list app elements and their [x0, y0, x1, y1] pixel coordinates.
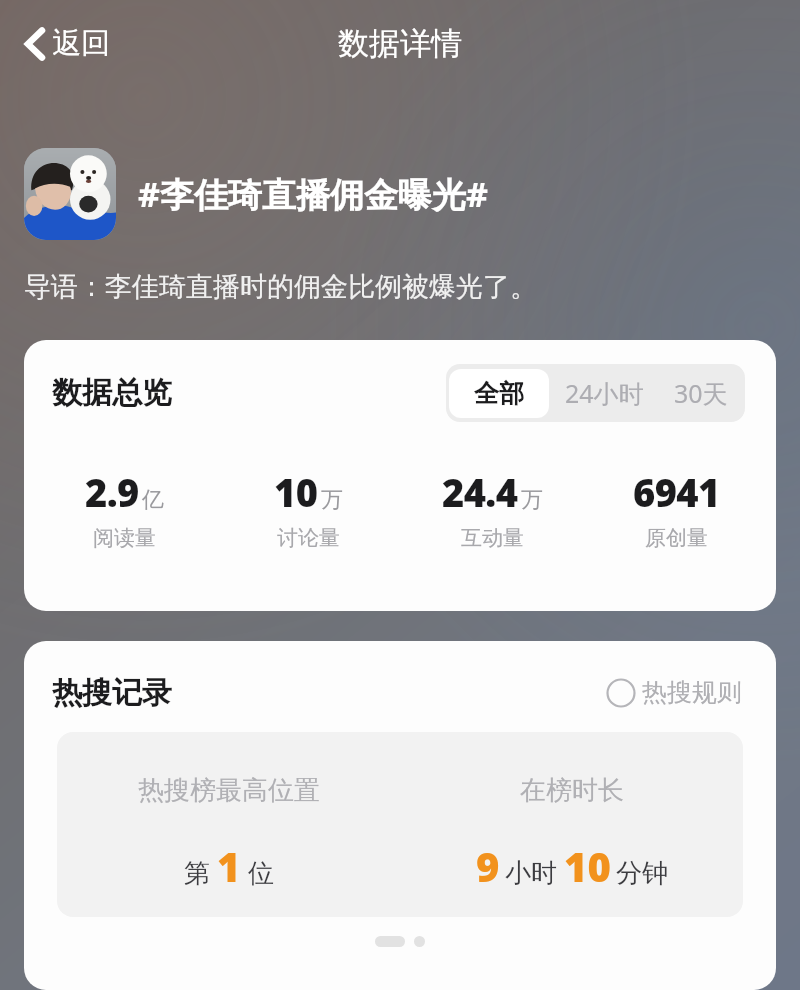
button[interactable]: 热搜榜最高位置 — [57, 732, 400, 917]
button[interactable]: 30天 — [660, 367, 742, 419]
button[interactable]: 10 — [216, 466, 400, 551]
staticText: 24.4 — [442, 466, 518, 518]
staticText: 返回 — [52, 25, 110, 62]
staticText: 1 — [217, 839, 241, 893]
button[interactable]: 24.4 — [400, 466, 584, 551]
staticText: 30天 — [674, 376, 728, 410]
staticText: 万 — [521, 486, 543, 514]
staticText: 导语：李佳琦直播时的佣金比例被爆光了。 — [24, 270, 537, 304]
button[interactable]: #李佳琦直播佣金曝光# — [24, 148, 776, 240]
button[interactable]: 6941 — [584, 466, 768, 551]
staticText: 在榜时长 — [520, 774, 624, 807]
staticText: 热搜榜最高位置 — [138, 774, 320, 807]
staticText: 24小时 — [565, 376, 644, 410]
staticText: 亿 — [142, 486, 164, 514]
button[interactable]: 2.9 — [32, 466, 216, 551]
staticText: 讨论量 — [277, 525, 340, 551]
staticText: 阅读量 — [93, 525, 156, 551]
staticText: 2.9 — [85, 466, 139, 518]
staticText: 数据详情 — [338, 24, 462, 63]
button[interactable]: 24小时 — [549, 367, 660, 419]
staticText: 10 — [274, 466, 318, 518]
staticText: 原创量 — [645, 525, 708, 551]
staticText: 第 — [184, 857, 210, 890]
button[interactable]: 在榜时长 — [400, 732, 743, 917]
button[interactable]: 返回 — [16, 19, 118, 68]
staticText: 全部 — [474, 378, 524, 409]
staticText: 10 — [564, 839, 611, 893]
staticText: 9 — [476, 839, 500, 893]
staticText: 6941 — [633, 466, 720, 518]
staticText: 互动量 — [461, 525, 524, 551]
staticText: 热搜规则 — [642, 677, 742, 708]
staticText: 小时 — [505, 857, 557, 890]
staticText: 热搜记录 — [52, 674, 172, 712]
button[interactable]: 全部 — [449, 369, 549, 418]
button[interactable]: 热搜规则 — [602, 673, 746, 712]
staticText: 数据总览 — [52, 374, 172, 412]
staticText: #李佳琦直播佣金曝光# — [138, 171, 488, 217]
staticText: 位 — [248, 857, 274, 890]
staticText: 万 — [321, 486, 343, 514]
staticText: 分钟 — [616, 857, 668, 890]
